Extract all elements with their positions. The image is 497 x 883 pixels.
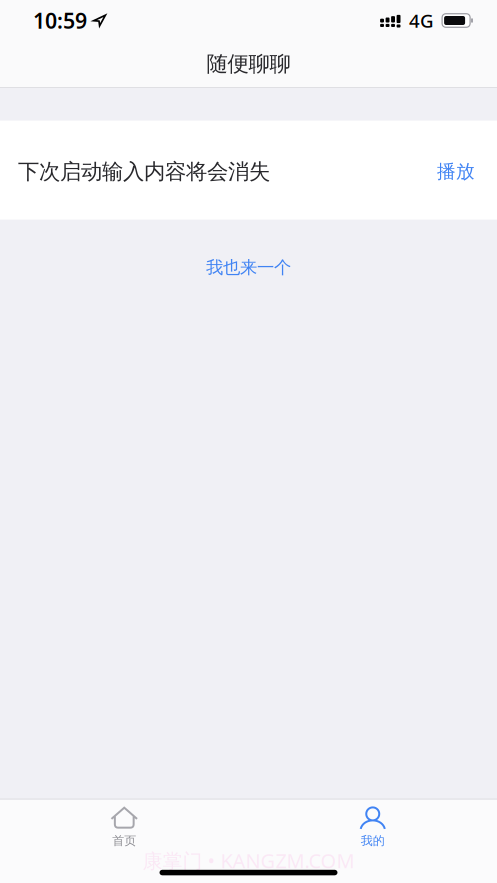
staticText: 我的 <box>361 833 385 848</box>
staticText: 播放 <box>437 160 475 183</box>
staticText: 下次启动输入内容将会消失 <box>18 158 270 185</box>
staticText: 10:59 <box>33 6 87 35</box>
staticText: 首页 <box>112 833 136 848</box>
button[interactable]: 我也来一个 <box>0 253 497 283</box>
staticText: 4G <box>409 8 434 33</box>
staticText: 我也来一个 <box>206 257 291 278</box>
button[interactable]: 播放 <box>425 124 475 220</box>
button[interactable]: 首页 <box>0 799 248 854</box>
button[interactable]: 我的 <box>248 799 497 854</box>
staticText: 康掌门 • KANGZM.COM <box>142 847 354 874</box>
staticText: 随便聊聊 <box>206 51 290 77</box>
